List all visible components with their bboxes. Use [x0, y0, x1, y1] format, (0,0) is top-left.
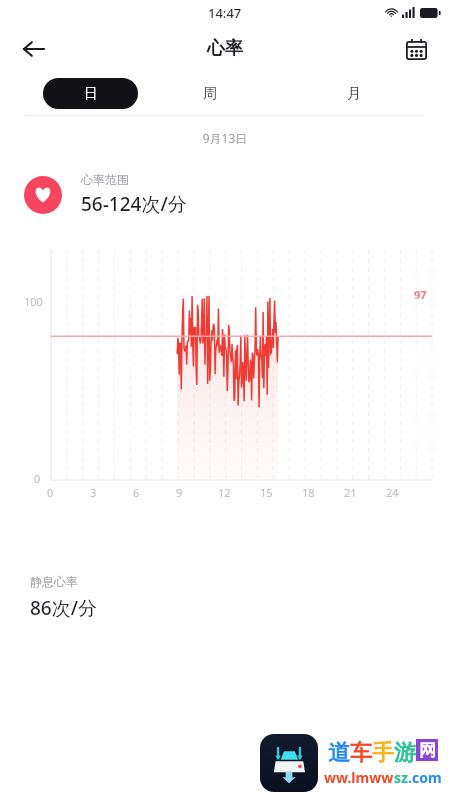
staticText: 车 [350, 739, 372, 767]
staticText: 100 [24, 294, 43, 309]
button[interactable]: Calendar [396, 29, 436, 69]
button[interactable]: 月 [282, 78, 426, 109]
button[interactable]: 日 [43, 78, 138, 109]
staticText: 97 [414, 287, 427, 302]
staticText: 9 [176, 485, 183, 500]
staticText: 游 [394, 739, 416, 767]
staticText: 15 [260, 485, 273, 500]
staticText: 24 [386, 485, 399, 500]
staticText: 0 [34, 471, 41, 486]
staticText: 周 [203, 85, 217, 103]
staticText: .com [408, 768, 442, 787]
staticText: 14:47 [208, 4, 242, 22]
staticText: 21 [344, 485, 357, 500]
staticText: 静息心率 [30, 574, 78, 589]
staticText: ww.lmww [324, 768, 394, 787]
button[interactable]: Back [14, 29, 54, 69]
staticText: 0 [47, 485, 54, 500]
staticText: 9月13日 [0, 130, 450, 146]
staticText: 月 [347, 85, 361, 103]
staticText: 6 [133, 485, 140, 500]
staticText: 心率 [207, 37, 243, 60]
staticText: sz [394, 768, 408, 787]
staticText: 12 [218, 485, 231, 500]
staticText: 手 [372, 739, 394, 767]
staticText: 56-124次/分 [81, 191, 187, 217]
staticText: 心率范围 [81, 172, 129, 187]
staticText: 网 [419, 740, 436, 761]
staticText: 86次/分 [30, 595, 98, 621]
staticText: 18 [302, 485, 315, 500]
staticText: 3 [90, 485, 97, 500]
staticText: 道 [328, 739, 350, 767]
staticText: 日 [84, 85, 98, 103]
button[interactable]: 周 [138, 78, 282, 109]
